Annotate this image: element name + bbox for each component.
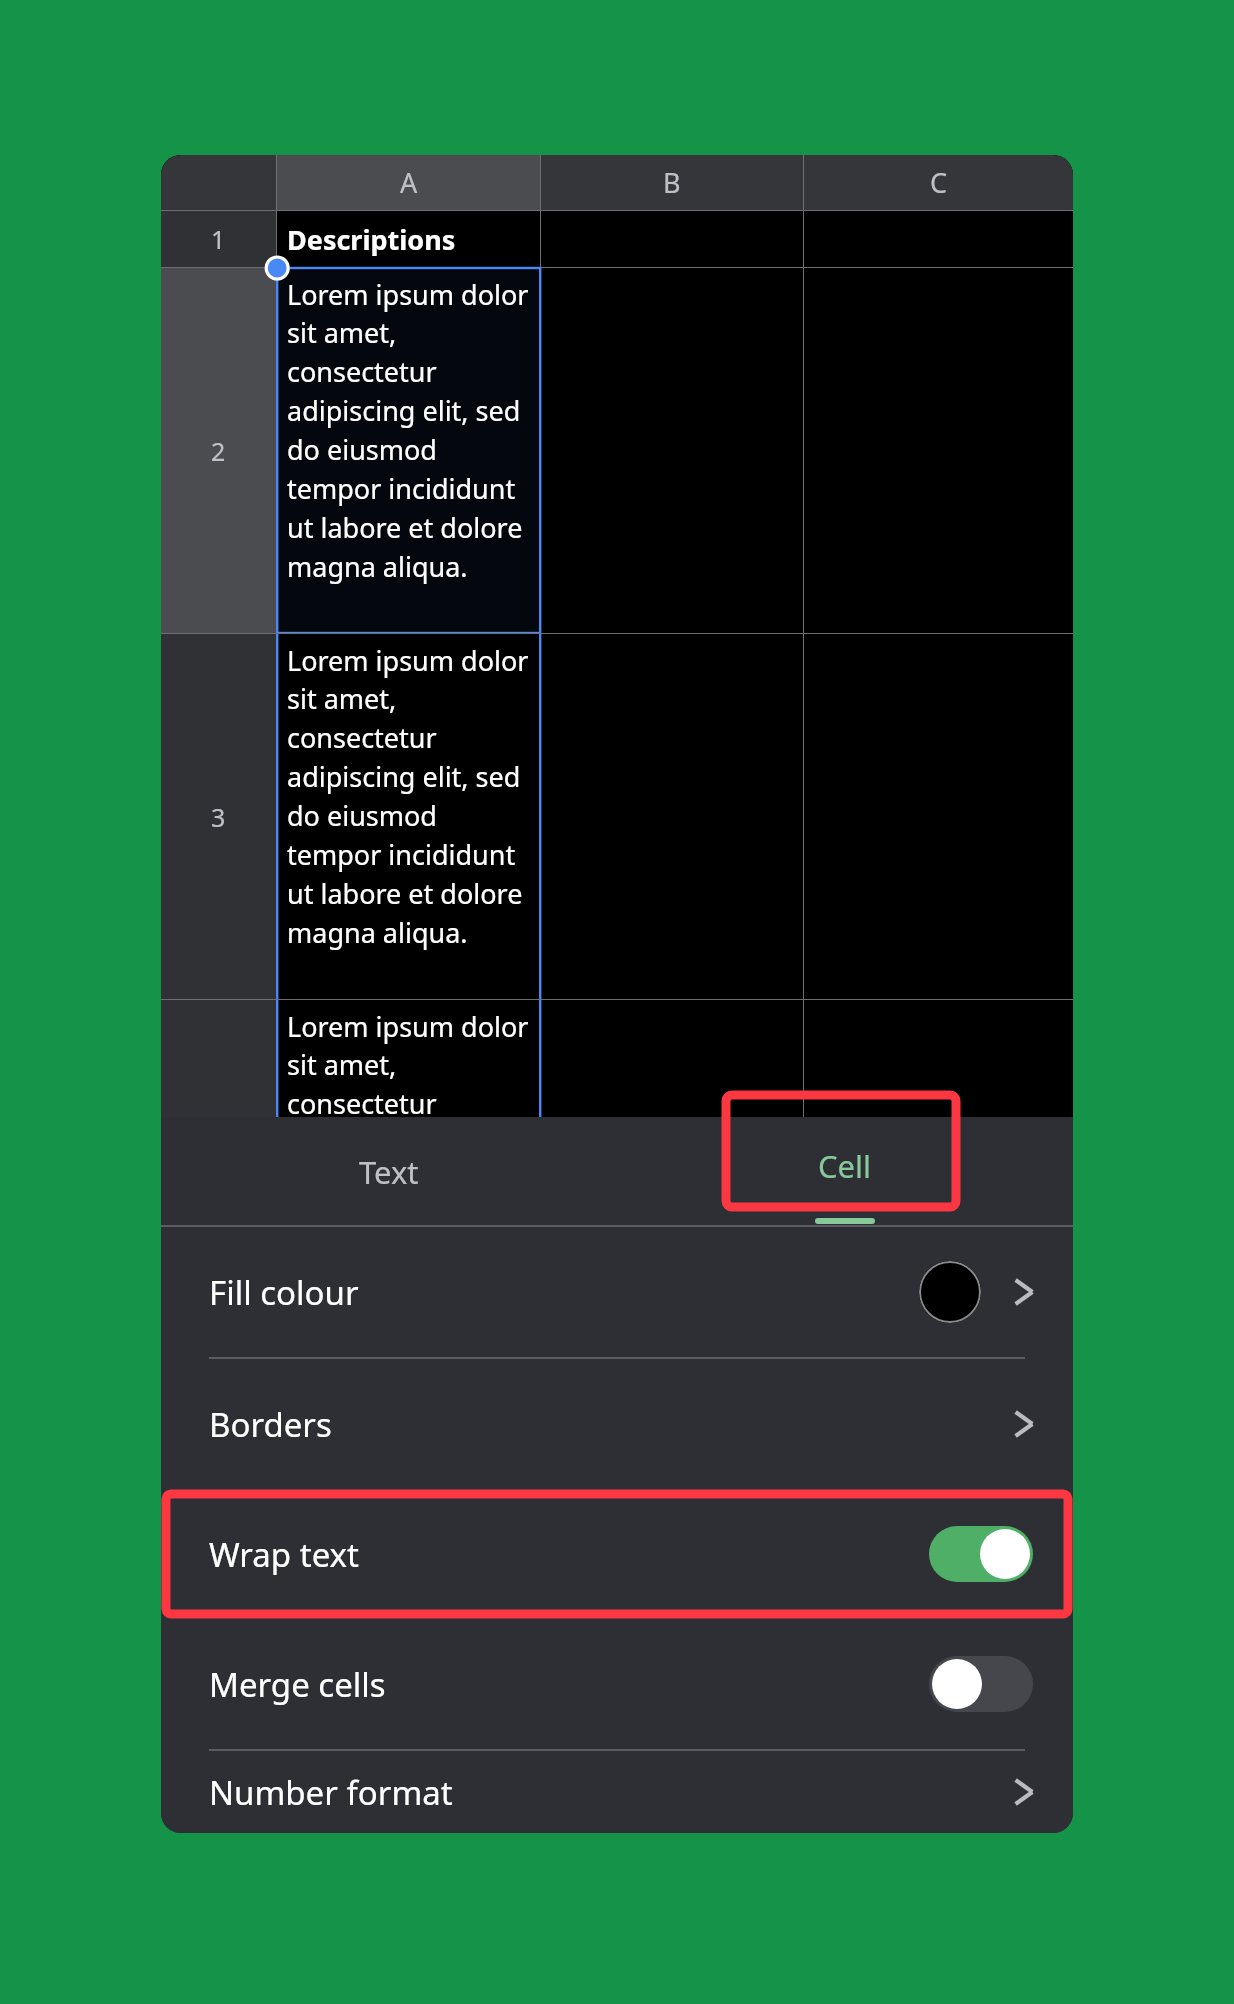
other: Open borders <box>1009 1409 1039 1439</box>
button[interactable]: Number format <box>161 1751 1073 1833</box>
button[interactable]: Merge cells <box>161 1619 1073 1749</box>
button[interactable]: 1 <box>161 211 276 267</box>
button[interactable]: Wrap text <box>161 1489 1073 1619</box>
button[interactable]: Text <box>161 1117 617 1227</box>
staticText: 3 <box>211 800 226 834</box>
staticText: Descriptions <box>287 221 456 258</box>
staticText: Lorem ipsum dolor sit amet, consectetur … <box>287 1008 534 1117</box>
button[interactable]: On <box>929 1526 1033 1582</box>
staticText: Number format <box>209 1770 1009 1815</box>
button[interactable]: Borders <box>161 1359 1073 1489</box>
staticText: Fill colour <box>209 1270 919 1315</box>
staticText: Text <box>359 1151 419 1193</box>
staticText: Merge cells <box>209 1662 929 1707</box>
button[interactable]: Lorem ipsum dolor sit amet, consectetur … <box>277 268 540 633</box>
button[interactable]: B <box>541 155 803 210</box>
other: Open number format <box>1009 1777 1039 1807</box>
button[interactable]: Off <box>929 1656 1033 1712</box>
staticText: Borders <box>209 1402 1009 1447</box>
other: Open fill colour <box>1009 1277 1039 1307</box>
staticText: C <box>930 164 948 201</box>
button[interactable]: 3 <box>161 634 276 999</box>
staticText: Lorem ipsum dolor sit amet, consectetur … <box>287 276 534 585</box>
staticText: B <box>663 164 681 201</box>
staticText: Wrap text <box>209 1532 929 1577</box>
button[interactable]: Cell <box>617 1117 1073 1227</box>
button[interactable]: Lorem ipsum dolor sit amet, consectetur … <box>277 1000 540 1117</box>
staticText: 2 <box>211 434 226 468</box>
button[interactable]: Fill colour <box>161 1227 1073 1357</box>
staticText: A <box>400 164 418 201</box>
button[interactable]: C <box>804 155 1073 210</box>
staticText: Lorem ipsum dolor sit amet, consectetur … <box>287 642 534 951</box>
button[interactable]: Lorem ipsum dolor sit amet, consectetur … <box>277 634 540 999</box>
staticText: Cell <box>818 1145 872 1187</box>
button[interactable]: A <box>277 155 540 210</box>
button[interactable]: 2 <box>161 268 276 633</box>
staticText: 1 <box>211 222 226 256</box>
